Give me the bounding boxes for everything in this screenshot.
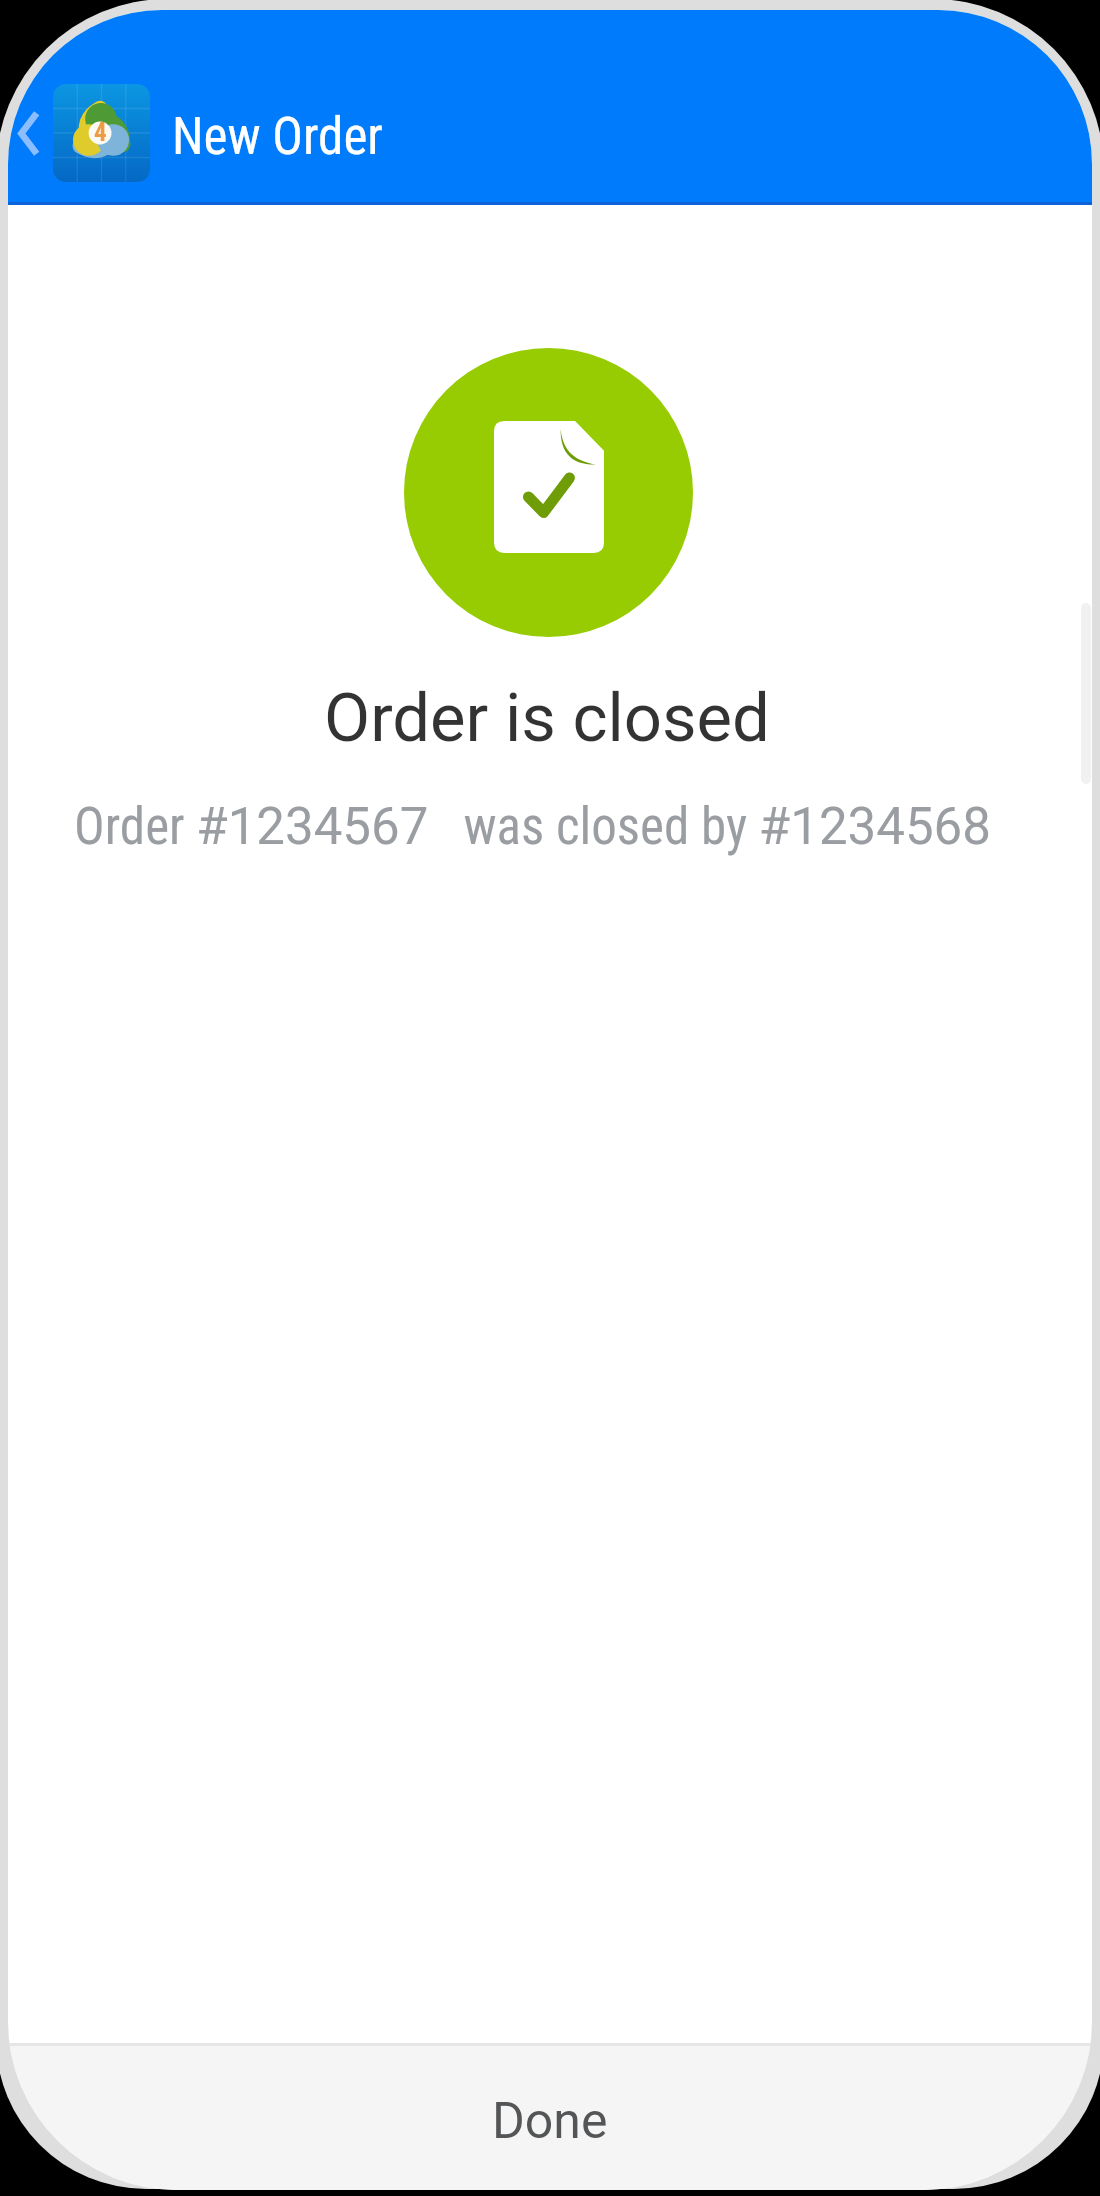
staticText: Done [492,2092,608,2151]
staticText: Order #1234567 was closed by #1234568 [74,797,991,857]
staticText: 4 [94,118,107,147]
staticText: New Order [172,107,383,167]
button[interactable]: Done [8,2046,1092,2190]
staticText: Order is closed [324,679,770,758]
button[interactable]: Back [8,67,54,159]
